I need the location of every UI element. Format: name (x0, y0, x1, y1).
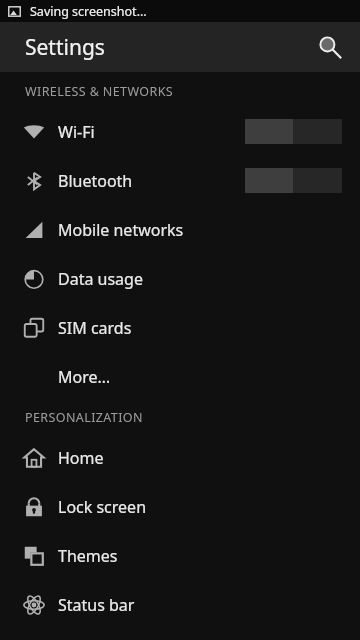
staticText: Themes (58, 545, 118, 567)
staticText: Data usage (58, 268, 143, 290)
button[interactable]: Wi-Fi (0, 107, 360, 156)
button[interactable]: Search (308, 25, 352, 69)
staticText: SIM cards (58, 317, 132, 339)
button[interactable]: Themes (0, 531, 360, 580)
staticText: Mobile networks (58, 219, 184, 241)
button[interactable]: Data usage (0, 254, 360, 303)
staticText: Home (58, 447, 104, 469)
staticText: PERSONALIZATION (25, 409, 143, 426)
staticText: Wi-Fi (58, 121, 95, 143)
staticText: Status bar (58, 594, 135, 616)
staticText: Saving screenshot… (30, 3, 147, 20)
button[interactable]: Home (0, 433, 360, 482)
staticText: More… (58, 366, 111, 388)
button[interactable]: Bluetooth toggle (245, 168, 342, 193)
button[interactable]: Mobile networks (0, 205, 360, 254)
staticText: WIRELESS & NETWORKS (25, 83, 174, 100)
button[interactable]: Bluetooth (0, 156, 360, 205)
button[interactable]: Lock screen (0, 482, 360, 531)
staticText: Lock screen (58, 496, 147, 518)
staticText: Bluetooth (58, 170, 133, 192)
staticText: Settings (25, 33, 105, 62)
button[interactable]: SIM cards (0, 303, 360, 352)
button[interactable]: Wi-Fi toggle (245, 119, 342, 144)
button[interactable]: Status bar (0, 580, 360, 629)
button[interactable]: More… (0, 352, 360, 401)
